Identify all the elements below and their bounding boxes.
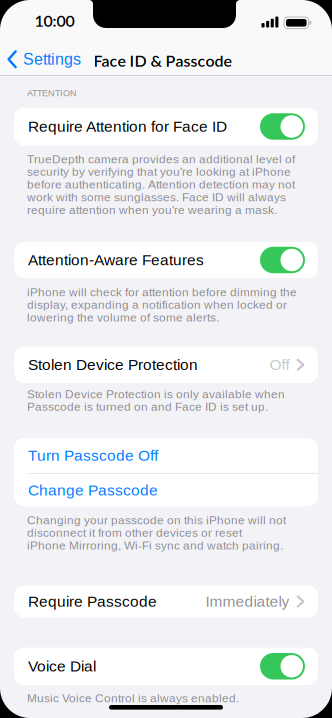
staticText: 10:00 bbox=[34, 11, 74, 30]
staticText: require attention when you're wearing a … bbox=[27, 203, 277, 216]
staticText: Attention-Aware Features bbox=[28, 251, 204, 269]
staticText: Stolen Device Protection bbox=[28, 356, 198, 373]
button[interactable]: Stolen Device Protection bbox=[14, 346, 318, 383]
staticText: Change Passcode bbox=[28, 481, 158, 499]
staticText: Off bbox=[269, 356, 289, 373]
staticText: work with some sunglasses. Face ID will … bbox=[27, 190, 286, 204]
button[interactable]: Turn Passcode Off bbox=[14, 438, 318, 473]
button[interactable]: Change Passcode bbox=[14, 474, 318, 506]
staticText: TrueDepth camera provides an additional … bbox=[27, 152, 295, 166]
staticText: security by verifying that you're lookin… bbox=[27, 165, 291, 178]
staticText: lowering the volume of some alerts. bbox=[27, 311, 219, 324]
staticText: Immediately bbox=[205, 593, 289, 610]
staticText: Changing your passcode on this iPhone wi… bbox=[27, 513, 286, 527]
staticText: iPhone Mirroring, Wi-Fi sync and watch p… bbox=[27, 539, 283, 552]
button[interactable]: Voice Dial on bbox=[260, 653, 305, 679]
staticText: Require Attention for Face ID bbox=[28, 118, 227, 135]
staticText: Passcode is turned on and Face ID is set… bbox=[27, 400, 268, 413]
staticText: before authenticating. Attention detecti… bbox=[27, 178, 295, 191]
staticText: Voice Dial bbox=[28, 658, 96, 675]
staticText: ATTENTION bbox=[27, 88, 77, 98]
button[interactable]: Back to Settings bbox=[7, 50, 81, 69]
button[interactable]: Attention-Aware Features on bbox=[260, 247, 305, 273]
staticText: display, expanding a notification when l… bbox=[27, 298, 287, 311]
button[interactable]: Require Attention for Face ID on bbox=[260, 113, 305, 140]
staticText: Music Voice Control is always enabled. bbox=[27, 691, 239, 705]
staticText: iPhone will check for attention before d… bbox=[27, 285, 297, 299]
staticText: disconnect it from other devices or rese… bbox=[27, 526, 242, 539]
staticText: Require Passcode bbox=[28, 593, 157, 610]
staticText: Settings bbox=[23, 50, 81, 68]
staticText: Stolen Device Protection is only availab… bbox=[27, 387, 285, 401]
staticText: Face ID & Passcode bbox=[93, 51, 231, 70]
staticText: Turn Passcode Off bbox=[28, 447, 158, 464]
button[interactable]: Require Passcode bbox=[14, 585, 318, 617]
